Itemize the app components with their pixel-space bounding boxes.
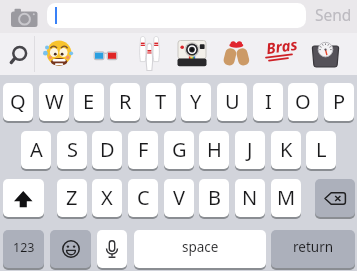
staticText: W [45, 88, 64, 115]
staticText: L [316, 136, 327, 163]
button[interactable]: Y [181, 83, 211, 121]
button[interactable]: O [288, 83, 318, 121]
button[interactable] [40, 33, 84, 75]
button[interactable]: G [164, 131, 194, 169]
button[interactable] [3, 179, 44, 217]
staticText: C [137, 184, 150, 211]
button[interactable]: Z [57, 179, 87, 217]
staticText: return [293, 238, 334, 256]
button[interactable]: Q [3, 83, 33, 121]
staticText: M [277, 184, 296, 211]
staticText: S [67, 136, 78, 163]
staticText: space [182, 238, 219, 256]
staticText: G [172, 136, 187, 163]
button[interactable]: U [217, 83, 247, 121]
button[interactable] [315, 179, 355, 217]
staticText: T [155, 88, 167, 115]
button[interactable] [304, 33, 348, 75]
staticText: U [225, 88, 240, 115]
staticText: Send [315, 4, 352, 25]
staticText: N [242, 184, 258, 211]
staticText: D [100, 136, 115, 163]
staticText: V [173, 184, 185, 211]
button[interactable]: K [271, 131, 301, 169]
button[interactable]: M [271, 179, 301, 217]
button[interactable]: Send [313, 4, 353, 25]
button[interactable]: C [128, 179, 158, 217]
staticText: 123 [13, 239, 35, 256]
button[interactable] [172, 33, 216, 75]
staticText: E [83, 88, 95, 115]
button[interactable] [97, 230, 127, 268]
button[interactable]: F [128, 131, 158, 169]
button[interactable] [84, 33, 128, 75]
button[interactable]: 123 [3, 230, 44, 268]
staticText: F [138, 136, 149, 163]
staticText: Z [66, 184, 78, 211]
staticText: Bras [265, 34, 299, 58]
staticText: Q [10, 88, 26, 115]
staticText: A [30, 136, 43, 163]
button[interactable]: S [57, 131, 87, 169]
button[interactable]: E [74, 83, 104, 121]
button[interactable] [11, 8, 38, 28]
button[interactable] [216, 33, 260, 75]
staticText: P [333, 88, 346, 115]
staticText: X [101, 184, 113, 211]
button[interactable]: V [164, 179, 194, 217]
staticText: K [280, 136, 293, 163]
button[interactable]: X [92, 179, 122, 217]
button[interactable]: L [306, 131, 336, 169]
staticText: R [119, 88, 132, 115]
staticText: B [208, 184, 221, 211]
button[interactable]: N [235, 179, 265, 217]
button[interactable]: J [235, 131, 265, 169]
button[interactable] [260, 33, 304, 75]
staticText: H [207, 136, 222, 163]
button[interactable]: P [324, 83, 354, 121]
button[interactable]: H [199, 131, 229, 169]
staticText: I [265, 88, 272, 115]
button[interactable]: return [271, 230, 355, 268]
button[interactable]: B [199, 179, 229, 217]
button[interactable]: W [39, 83, 69, 121]
button[interactable]: T [146, 83, 176, 121]
button[interactable] [47, 3, 306, 28]
button[interactable] [128, 33, 172, 75]
button[interactable] [0, 33, 34, 75]
staticText: J [247, 136, 253, 163]
staticText: O [295, 88, 311, 115]
button[interactable]: R [110, 83, 140, 121]
button[interactable] [50, 230, 91, 268]
button[interactable]: D [92, 131, 122, 169]
staticText: Y [190, 88, 202, 115]
button[interactable]: I [253, 83, 283, 121]
button[interactable]: A [21, 131, 51, 169]
button[interactable]: space [134, 230, 266, 268]
